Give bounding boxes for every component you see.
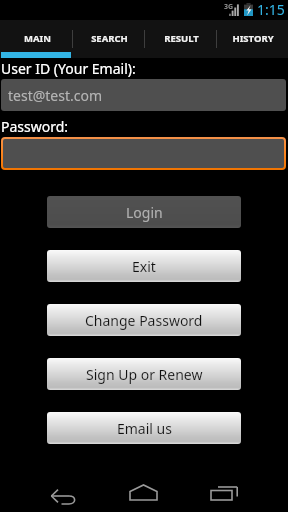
button[interactable]: Login [47, 196, 241, 228]
staticText: Login [126, 203, 163, 222]
staticText: RESULT [164, 32, 199, 45]
staticText: SEARCH [91, 32, 128, 45]
button[interactable]: Home [114, 468, 174, 512]
staticText: test@test.com [8, 86, 103, 105]
staticText: Sign Up or Renew [86, 365, 203, 384]
staticText: Change Password [85, 311, 203, 330]
staticText: User ID (Your Email): [1, 59, 136, 78]
staticText: 3G [224, 2, 234, 12]
staticText: 1:15 [257, 0, 285, 19]
button[interactable]: MAIN [0, 20, 72, 58]
button[interactable]: HISTORY [216, 20, 288, 58]
button[interactable]: RESULT [144, 20, 216, 58]
staticText: MAIN [24, 32, 51, 45]
button[interactable]: test@test.com [1, 79, 286, 111]
staticText: Password: [1, 117, 69, 136]
button[interactable]: Recents [195, 468, 255, 512]
button[interactable]: Email us [47, 412, 241, 444]
staticText: HISTORY [232, 32, 274, 45]
button[interactable]: SEARCH [72, 20, 144, 58]
button[interactable]: Exit [47, 250, 241, 282]
staticText: Exit [132, 257, 156, 276]
button[interactable]: Change Password [47, 304, 241, 336]
staticText: Email us [117, 419, 172, 438]
button[interactable]: Sign Up or Renew [47, 358, 241, 390]
button[interactable]: Back [34, 468, 94, 512]
